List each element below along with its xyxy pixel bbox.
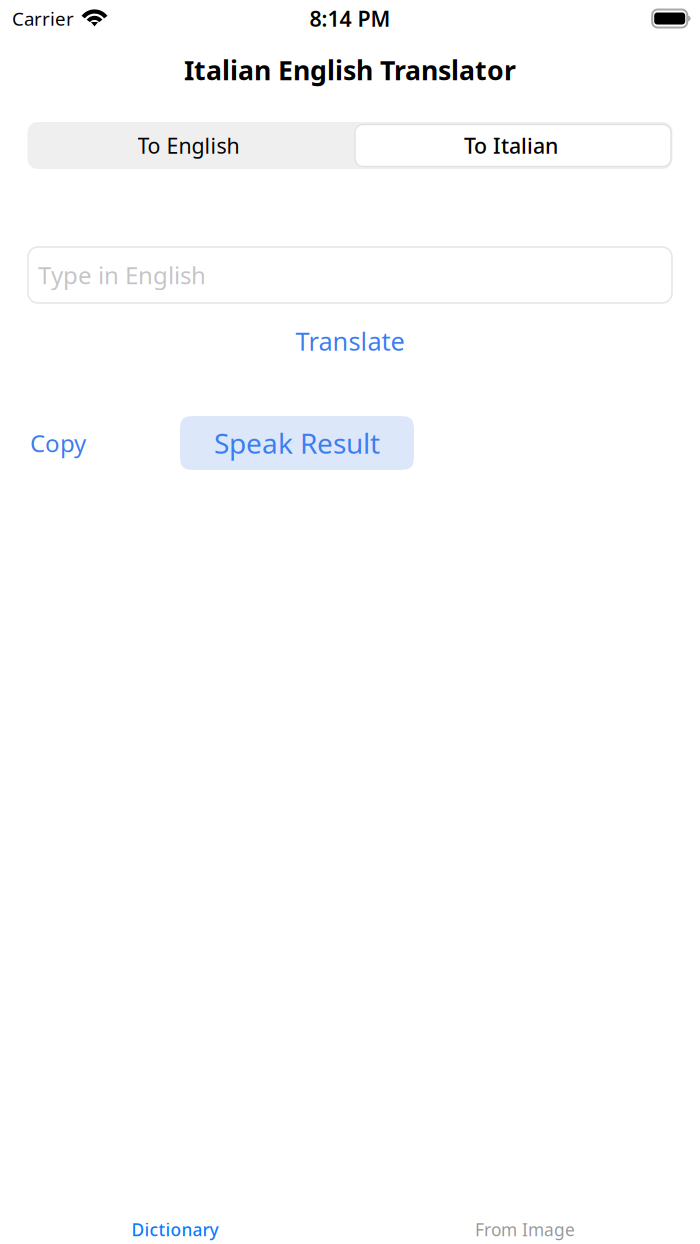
staticText: Translate: [295, 324, 404, 358]
staticText: Speak Result: [214, 424, 380, 462]
button[interactable]: Type in English: [28, 247, 672, 303]
button[interactable]: Dictionary: [0, 1204, 350, 1244]
button[interactable]: To English: [27, 122, 349, 169]
staticText: From Image: [475, 1218, 575, 1241]
staticText: Type in English: [38, 259, 206, 291]
button[interactable]: To Italian: [349, 122, 672, 169]
staticText: 8:14 PM: [309, 4, 390, 33]
button[interactable]: From Image: [350, 1204, 700, 1244]
staticText: To Italian: [464, 131, 558, 160]
button[interactable]: Copy: [28, 416, 88, 470]
staticText: Copy: [30, 427, 86, 459]
staticText: Dictionary: [131, 1218, 218, 1241]
staticText: Carrier: [12, 6, 74, 31]
button[interactable]: Translate: [295, 324, 404, 358]
staticText: Italian English Translator: [184, 52, 516, 88]
staticText: To English: [137, 131, 239, 160]
button[interactable]: Speak Result: [180, 416, 414, 470]
